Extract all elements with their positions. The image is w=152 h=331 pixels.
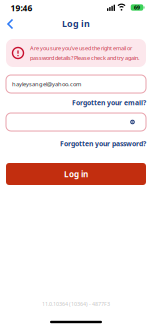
button[interactable]: Password — [6, 113, 146, 131]
staticText: 19:46 — [10, 2, 32, 14]
button[interactable]: Back — [3, 16, 17, 32]
staticText: hayleysangel@yahoo.com — [12, 80, 81, 88]
button[interactable]: Email — [6, 75, 146, 93]
button[interactable]: Forgotten your password? — [60, 139, 146, 148]
staticText: 69 — [134, 4, 140, 11]
button[interactable]: Forgotten your email? — [72, 98, 146, 107]
staticText: Log in — [62, 18, 90, 29]
staticText: Log in — [64, 169, 88, 179]
staticText: password details? Please check and try a… — [30, 54, 140, 61]
staticText: Forgotten your email? — [72, 98, 146, 107]
staticText: Are you sure you've used the right email… — [30, 44, 132, 52]
button[interactable]: Show password — [127, 118, 137, 126]
staticText: Forgotten your password? — [60, 139, 146, 148]
button[interactable]: Log in — [6, 163, 146, 185]
staticText: 11.0.10364 (10364) - 4877F3 — [42, 300, 110, 308]
